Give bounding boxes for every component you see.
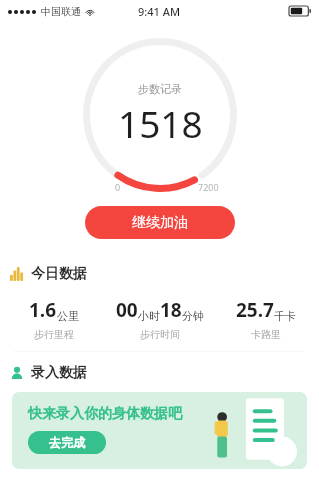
staticText: 00 [116,297,138,323]
staticText: 步行里程 [34,328,74,341]
staticText: 公里 [57,309,79,323]
other: 录入身体数据插图 [206,393,301,468]
staticText: 9:41 AM [138,4,181,19]
staticText: 录入数据 [31,364,87,382]
staticText: 步数记录 [138,82,182,96]
staticText: 快来录入你的身体数据吧 [28,405,182,423]
staticText: 继续加油 [132,214,188,232]
staticText: 去完成 [49,435,85,450]
staticText: 中国联通 [41,5,81,18]
staticText: 小时 [138,309,160,323]
button[interactable]: 继续加油 [85,206,235,239]
staticText: 千卡 [274,309,296,323]
staticText: 25.7 [236,297,274,323]
button[interactable]: 去完成 [28,431,106,454]
staticText: 今日数据 [31,265,87,283]
staticText: 18 [160,297,182,323]
staticText: 步行时间 [140,328,180,341]
staticText: 分钟 [182,309,204,323]
button[interactable]: 快来录入你的身体数据吧 [12,392,307,469]
staticText: 卡路里 [251,328,281,341]
staticText: 7200 [198,181,219,193]
staticText: 1.6 [29,297,57,323]
staticText: 0 [115,181,121,193]
staticText: 1518 [118,98,203,148]
